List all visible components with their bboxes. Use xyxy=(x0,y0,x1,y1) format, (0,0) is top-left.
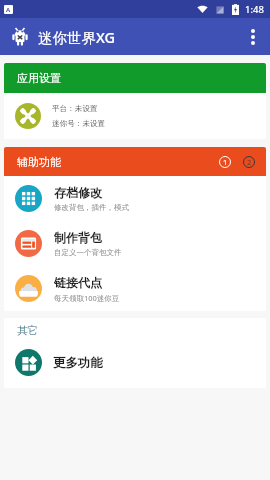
button[interactable]: 存档修改 xyxy=(4,176,266,221)
button[interactable]: Step 1 xyxy=(219,156,231,168)
staticText: 修改背包，插件，模式 xyxy=(54,203,129,212)
staticText: 存档修改 xyxy=(54,185,102,200)
staticText: A xyxy=(6,6,11,14)
button[interactable]: 链接代点 xyxy=(4,266,266,311)
staticText: 自定义一个背包文件 xyxy=(54,248,122,257)
staticText: 迷你世界XG xyxy=(38,27,116,47)
button[interactable]: 平台：未设置 xyxy=(4,93,266,139)
staticText: 平台：未设置 xyxy=(52,104,98,114)
staticText: 1 xyxy=(223,157,228,167)
staticText: 其它 xyxy=(17,324,38,337)
staticText: 1:48 xyxy=(245,3,264,16)
staticText: 迷你号：未设置 xyxy=(52,119,106,129)
staticText: 应用设置 xyxy=(17,71,61,85)
staticText: 制作背包 xyxy=(54,230,102,245)
button[interactable]: Step 2 xyxy=(243,156,255,168)
button[interactable]: 更多功能 xyxy=(4,337,266,388)
staticText: 2 xyxy=(247,157,252,167)
staticText: 链接代点 xyxy=(54,275,102,290)
staticText: 每天领取100迷你豆 xyxy=(54,293,120,303)
staticText: 辅助功能 xyxy=(17,155,61,169)
button[interactable]: 制作背包 xyxy=(4,221,266,266)
staticText: 更多功能 xyxy=(53,355,103,371)
button[interactable]: More options xyxy=(236,21,270,53)
